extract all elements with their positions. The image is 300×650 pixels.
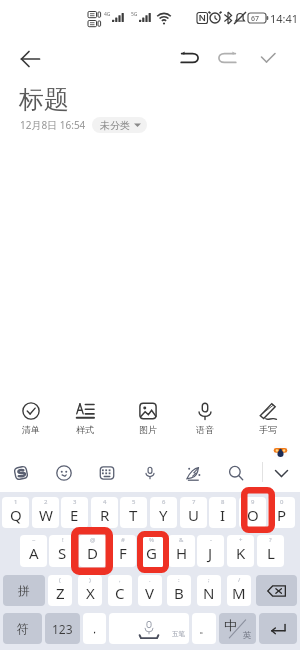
staticText: 8 bbox=[221, 498, 225, 506]
staticText: 5 bbox=[132, 498, 136, 506]
button[interactable]: : bbox=[167, 575, 191, 606]
button[interactable]: ? bbox=[257, 535, 284, 567]
staticText: D bbox=[87, 543, 98, 563]
button[interactable]: 0 bbox=[268, 497, 295, 528]
button[interactable]: 4 bbox=[91, 497, 118, 528]
button[interactable]: # bbox=[109, 535, 136, 567]
button[interactable]: % bbox=[138, 535, 165, 567]
button[interactable]: 样式 bbox=[66, 402, 104, 435]
button[interactable]: & bbox=[168, 535, 195, 567]
button[interactable]: 6 bbox=[150, 497, 177, 528]
button[interactable]: Emoji bbox=[50, 459, 78, 487]
staticText: C bbox=[115, 583, 125, 603]
button[interactable]: Space bbox=[109, 613, 189, 644]
staticText: 123 bbox=[52, 621, 73, 637]
staticText: @ bbox=[90, 536, 96, 544]
staticText: Z bbox=[56, 583, 65, 603]
staticText: 。 bbox=[199, 622, 210, 636]
staticText: 清单 bbox=[22, 424, 40, 435]
button[interactable]: Key bbox=[259, 613, 297, 644]
staticText: H bbox=[176, 543, 188, 563]
button[interactable]: Handwriting bbox=[179, 459, 207, 487]
button[interactable]: 1 bbox=[2, 497, 29, 528]
button[interactable]: Chinese English toggle bbox=[219, 613, 256, 644]
staticText: Y bbox=[159, 505, 168, 525]
button[interactable]: / bbox=[227, 575, 251, 606]
button[interactable]: 语音 bbox=[186, 402, 224, 435]
staticText: I bbox=[220, 505, 226, 525]
button[interactable]: Hide keyboard bbox=[267, 460, 295, 486]
staticText: & bbox=[179, 536, 184, 544]
button[interactable]: 7 bbox=[180, 497, 207, 528]
button[interactable]: 未分类 bbox=[92, 117, 147, 133]
staticText: 1 bbox=[14, 498, 18, 506]
button[interactable]: Redo bbox=[212, 43, 242, 73]
button[interactable]: 。 bbox=[192, 613, 216, 644]
button[interactable]: ! bbox=[49, 535, 76, 567]
button[interactable]: 符 bbox=[3, 613, 42, 644]
button[interactable]: Voice input bbox=[136, 459, 164, 487]
staticText: J bbox=[208, 543, 213, 563]
button[interactable]: , bbox=[108, 575, 132, 606]
staticText: ( bbox=[59, 576, 61, 584]
button[interactable]: 手写 bbox=[249, 402, 287, 435]
button[interactable]: . bbox=[138, 575, 162, 606]
staticText: 语音 bbox=[196, 424, 214, 435]
button[interactable]: 123 bbox=[45, 613, 80, 644]
staticText: ~ bbox=[32, 536, 36, 544]
staticText: 五笔 bbox=[172, 630, 185, 638]
staticText: R bbox=[100, 505, 110, 525]
button[interactable]: Search bbox=[222, 459, 250, 487]
button[interactable]: Key bbox=[256, 575, 297, 606]
button[interactable]: @ bbox=[79, 535, 106, 567]
staticText: Q bbox=[10, 505, 22, 525]
button[interactable]: - bbox=[197, 535, 224, 567]
button[interactable]: 清单 bbox=[12, 402, 50, 435]
button[interactable]: ; bbox=[197, 575, 221, 606]
staticText: 符 bbox=[17, 621, 29, 636]
button[interactable]: Back bbox=[14, 43, 46, 75]
staticText: 0 bbox=[280, 498, 284, 506]
staticText: 4G bbox=[104, 11, 111, 18]
button[interactable]: 图片 bbox=[129, 402, 167, 435]
staticText: 拼 bbox=[18, 583, 30, 598]
staticText: 67 bbox=[251, 14, 260, 24]
staticText: 4 bbox=[103, 498, 107, 506]
button[interactable]: ~ bbox=[20, 535, 47, 567]
button[interactable]: 8 bbox=[209, 497, 236, 528]
button[interactable]: 5 bbox=[120, 497, 147, 528]
staticText: 未分类 bbox=[100, 119, 130, 132]
staticText: 样式 bbox=[76, 424, 94, 435]
button[interactable]: 3 bbox=[61, 497, 88, 528]
staticText: ， bbox=[89, 622, 100, 636]
button[interactable]: 拼 bbox=[3, 575, 45, 606]
staticText: T bbox=[129, 505, 138, 525]
staticText: K bbox=[236, 543, 246, 563]
staticText: U bbox=[188, 505, 199, 525]
button[interactable]: ( bbox=[48, 575, 72, 606]
button[interactable]: Undo bbox=[175, 43, 205, 73]
staticText: ! bbox=[62, 536, 64, 544]
staticText: L bbox=[267, 543, 275, 563]
staticText: ? bbox=[269, 536, 272, 544]
button[interactable]: + bbox=[227, 535, 254, 567]
staticText: - bbox=[210, 536, 212, 544]
staticText: 2 bbox=[44, 498, 48, 506]
button[interactable]: Done bbox=[253, 43, 283, 73]
staticText: ; bbox=[208, 576, 210, 584]
staticText: W bbox=[39, 505, 53, 525]
staticText: 6 bbox=[162, 498, 166, 506]
button[interactable]: ) bbox=[78, 575, 102, 606]
staticText: 5G bbox=[131, 11, 138, 18]
button[interactable]: Sogou input bbox=[7, 459, 35, 487]
staticText: F bbox=[119, 543, 127, 563]
button[interactable]: 2 bbox=[32, 497, 59, 528]
staticText: 图片 bbox=[139, 424, 157, 435]
staticText: 3 bbox=[73, 498, 77, 506]
staticText: A bbox=[29, 543, 39, 563]
staticText: S bbox=[58, 543, 67, 563]
staticText: , bbox=[119, 576, 121, 584]
button[interactable]: ， bbox=[83, 613, 106, 644]
button[interactable]: Keyboard layout bbox=[93, 459, 121, 487]
button[interactable]: 9 bbox=[239, 497, 266, 528]
